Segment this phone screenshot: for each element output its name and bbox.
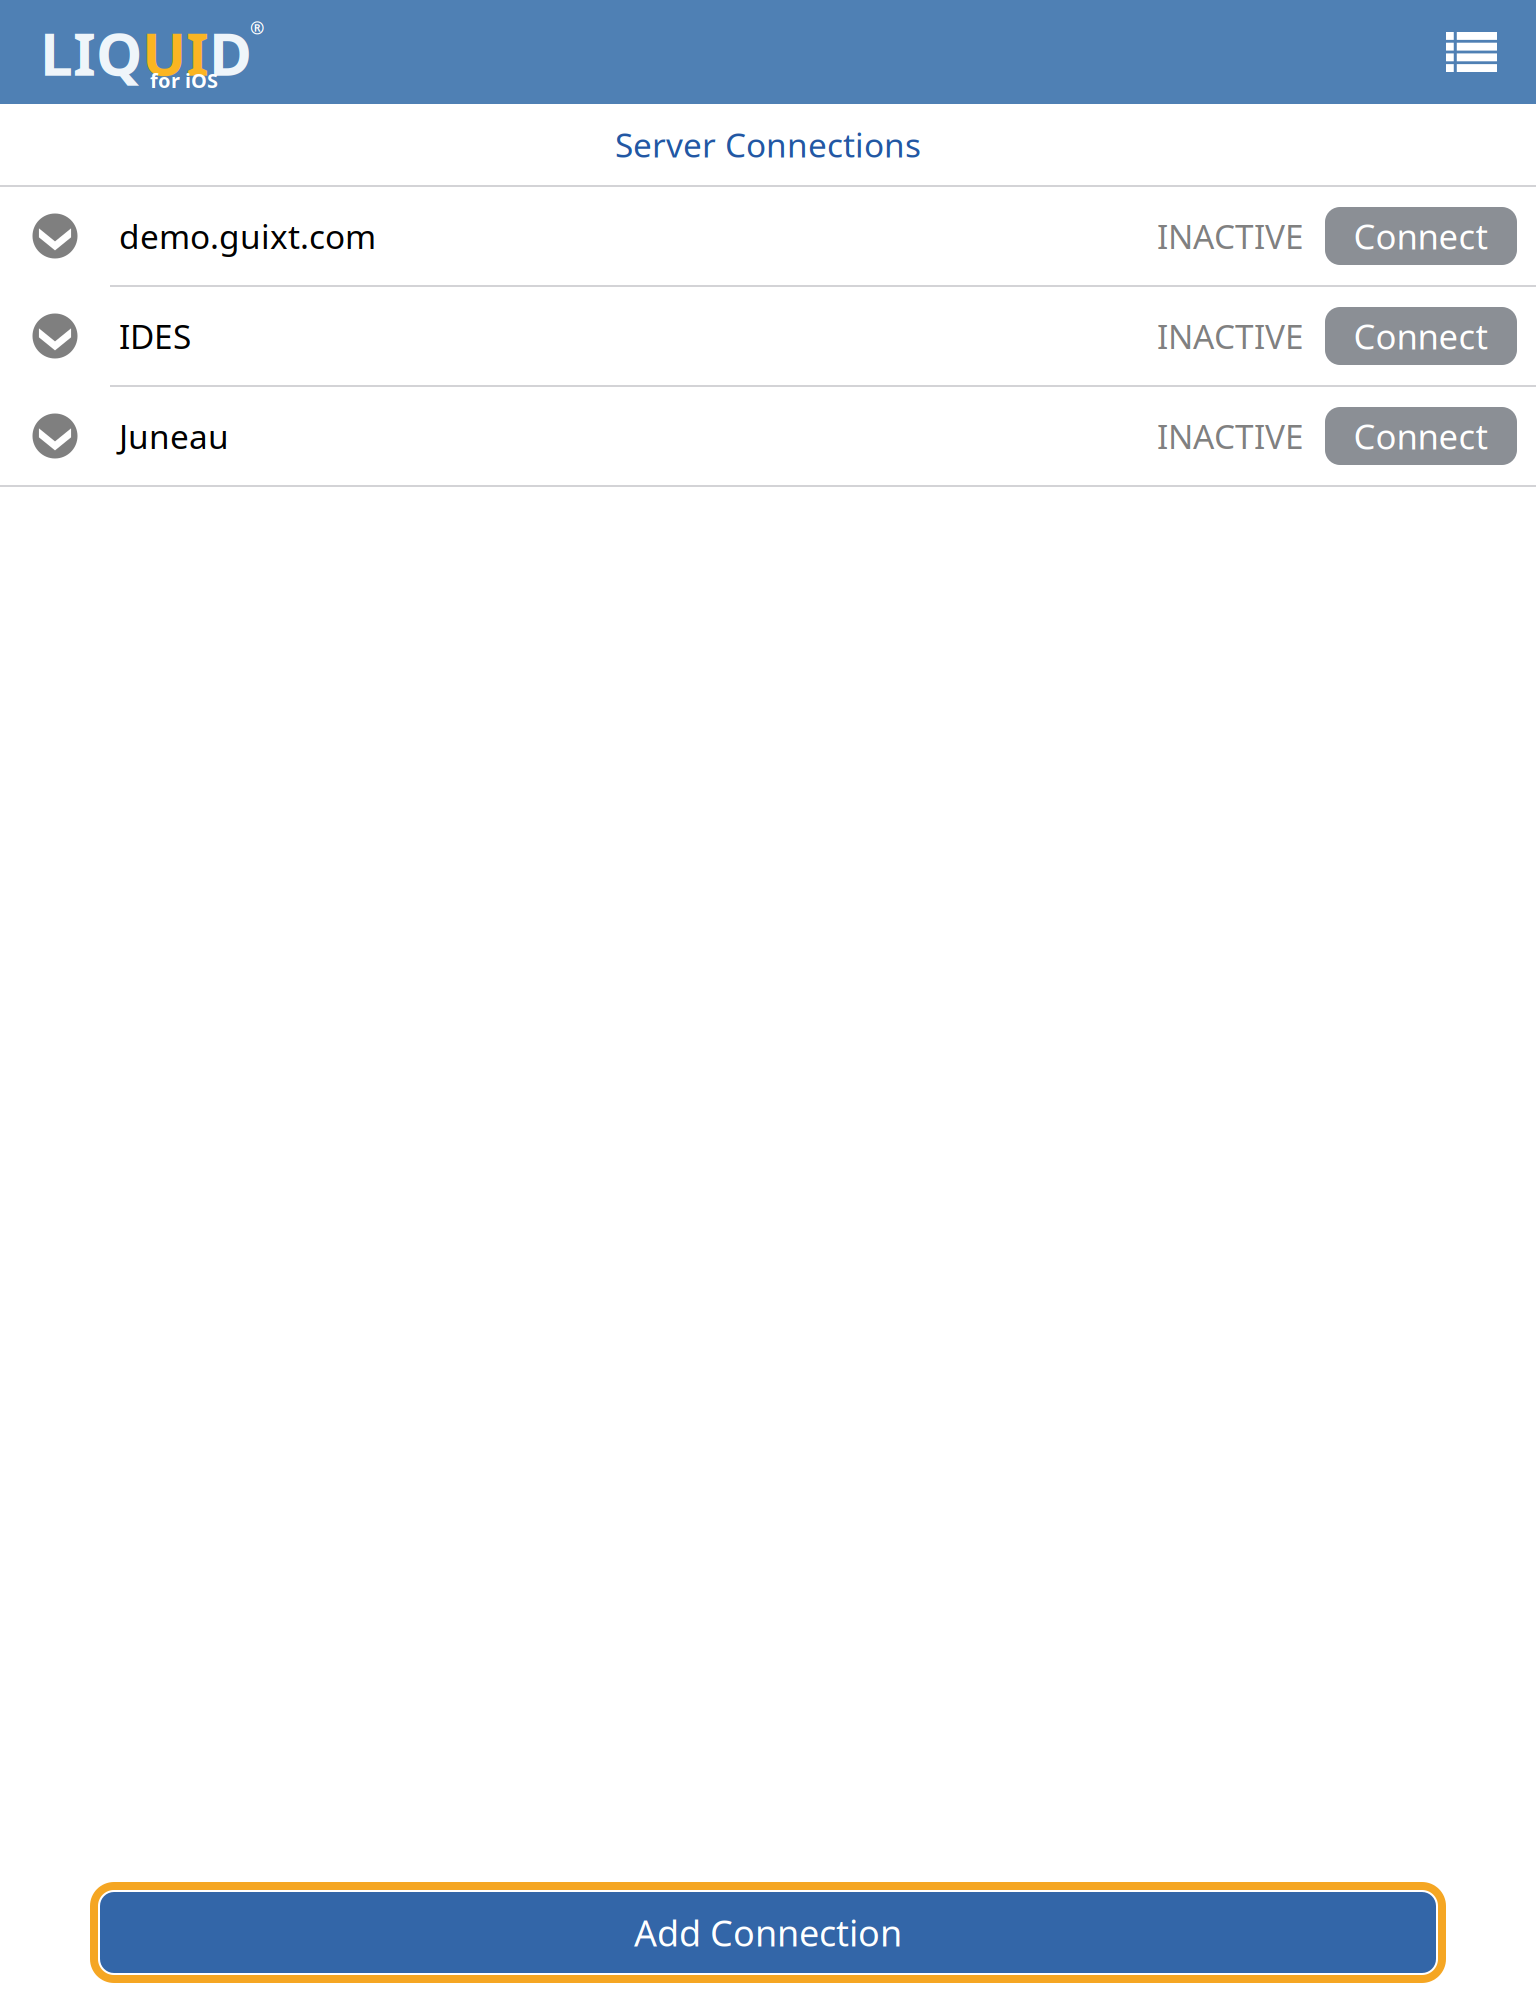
staticText: INACTIVE [1157, 314, 1304, 358]
button[interactable]: Expand IDES [0, 287, 110, 385]
button[interactable]: Menu [1426, 12, 1536, 92]
staticText: demo.guixt.com [119, 214, 376, 258]
staticText: UI [142, 14, 209, 92]
button[interactable]: Connect [1304, 307, 1536, 365]
button[interactable]: Connect [1304, 207, 1536, 265]
staticText: for iOS [150, 67, 218, 94]
staticText: ® [250, 16, 264, 39]
button[interactable]: Connect [1304, 407, 1536, 465]
staticText: D [209, 14, 252, 92]
button[interactable]: Add Connection [0, 1886, 1536, 2012]
staticText: INACTIVE [1157, 414, 1304, 458]
staticText: Connect [1353, 413, 1488, 459]
staticText: IDES [119, 314, 191, 358]
button[interactable]: Expand Juneau [0, 387, 110, 485]
staticText: INACTIVE [1157, 214, 1304, 258]
staticText: Connect [1353, 213, 1488, 259]
staticText: Connect [1353, 313, 1488, 359]
staticText: Juneau [119, 414, 229, 458]
staticText: LIQ [40, 14, 142, 92]
staticText: Add Connection [634, 1909, 902, 1956]
staticText: Server Connections [615, 122, 921, 167]
button[interactable]: Expand demo.guixt.com [0, 187, 110, 285]
